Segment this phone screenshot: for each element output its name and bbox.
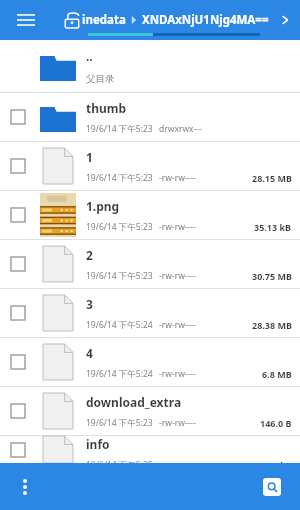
button[interactable]: Select 4 (0, 338, 300, 386)
staticText: 19/6/14 下午5:23 (86, 270, 153, 282)
staticText: 2 (86, 247, 93, 263)
staticText: -rw-rw---- (159, 270, 196, 282)
button[interactable]: Select 1.png (0, 191, 36, 239)
staticText: 父目录 (86, 73, 115, 85)
button[interactable]: Select 3 (0, 289, 36, 337)
button[interactable]: Select 4 (0, 338, 36, 386)
staticText: inedata (82, 12, 126, 28)
staticText: .. (86, 48, 93, 64)
staticText: thumb (86, 100, 127, 116)
button[interactable]: Menu (8, 2, 44, 38)
button[interactable]: Select thumb (0, 93, 36, 141)
staticText: -rw-rw---- (159, 319, 196, 331)
button[interactable]: Select download_extra (0, 387, 300, 435)
button[interactable]: Unlock (56, 4, 88, 36)
button[interactable]: Forward (270, 5, 300, 35)
staticText: XNDAxNjU1Njg4MA== (142, 12, 269, 28)
button[interactable]: Select info (0, 436, 36, 463)
staticText: download_extra (86, 394, 182, 410)
button[interactable]: Select 1 (0, 142, 36, 190)
button[interactable]: Search (256, 471, 288, 503)
staticText: 19/6/14 下午5:23 (86, 172, 153, 184)
button[interactable]: Select 2 (0, 240, 300, 288)
button[interactable]: Select 2 (0, 240, 36, 288)
staticText: -rw-rw---- (159, 172, 196, 184)
staticText: 35.13 kB (254, 221, 292, 233)
staticText: -rw-rw---- (159, 368, 196, 380)
staticText: 1 (86, 149, 93, 165)
button[interactable]: Select 1.png (0, 191, 300, 239)
staticText: 28.15 MB (252, 172, 292, 184)
staticText: 28.38 MB (252, 319, 292, 331)
staticText: 146.0 B (260, 417, 292, 429)
staticText: 1.png (86, 198, 120, 214)
staticText: 3.85 kB (260, 459, 292, 463)
button[interactable]: Select thumb (0, 93, 300, 141)
staticText: 3 (86, 296, 93, 312)
staticText: -rw-rw---- (159, 221, 196, 233)
staticText: 19/6/14 下午5:24 (86, 368, 153, 380)
staticText: 4 (86, 345, 93, 361)
staticText: 19/6/14 下午5:23 (86, 221, 153, 233)
staticText: 19/6/14 下午5:23 (86, 417, 153, 429)
staticText: 30.75 MB (252, 270, 292, 282)
button[interactable]: Select info (0, 436, 300, 463)
button[interactable]: More options (8, 470, 42, 504)
button[interactable]: Select 3 (0, 289, 300, 337)
button[interactable]: .. (0, 40, 300, 92)
staticText: drwxrwx--- (159, 123, 202, 135)
staticText: 19/6/14 下午5:24 (86, 319, 153, 331)
staticText: 6.8 MB (262, 368, 292, 380)
staticText: 19/6/14 下午5:23 (86, 123, 153, 135)
staticText: 19/6/14 下午5:25 (86, 459, 153, 463)
button[interactable]: Select 1 (0, 142, 300, 190)
staticText: -rw-rw---- (159, 417, 196, 429)
button[interactable]: Select download_extra (0, 387, 36, 435)
staticText: info (86, 436, 110, 452)
